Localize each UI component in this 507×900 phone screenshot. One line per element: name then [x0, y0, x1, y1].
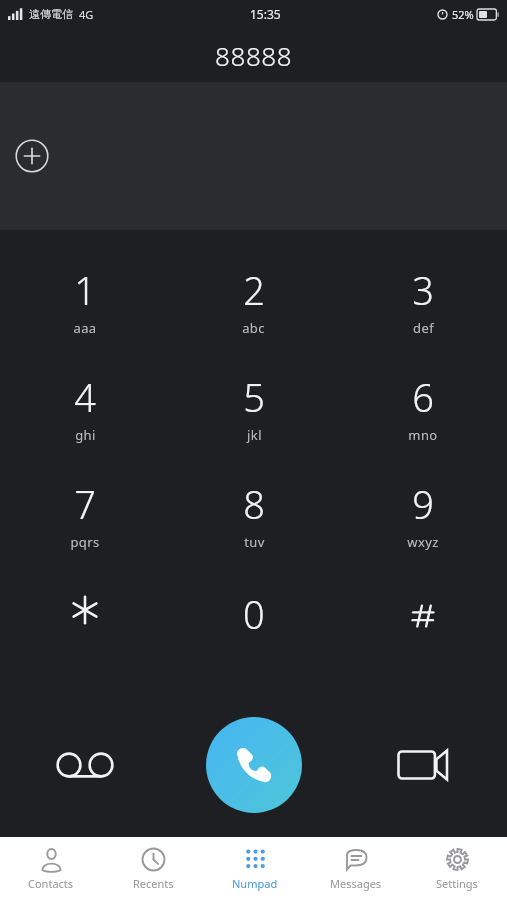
button[interactable]: 8	[169, 472, 338, 557]
staticText: wxyz	[407, 533, 439, 551]
staticText: 遠傳電信	[29, 7, 73, 21]
button[interactable]: 6	[338, 365, 507, 450]
button[interactable]: Settings	[406, 837, 507, 900]
staticText: Settings	[436, 876, 478, 891]
staticText: 0	[243, 588, 265, 640]
staticText: aaa	[73, 319, 97, 337]
button[interactable]: Messages	[305, 837, 406, 900]
staticText: 1	[74, 264, 96, 316]
button[interactable]: 3	[338, 258, 507, 343]
staticText: 8	[243, 478, 265, 530]
staticText: ghi	[75, 426, 96, 444]
button[interactable]: 9	[338, 472, 507, 557]
staticText: Messages	[330, 876, 382, 891]
button[interactable]: 4	[0, 365, 169, 450]
staticText: 3	[412, 264, 434, 316]
staticText: 15:35	[250, 6, 281, 22]
staticText: mno	[408, 426, 438, 444]
staticText: 52%	[452, 7, 474, 22]
staticText: 6	[412, 371, 434, 423]
staticText: Contacts	[28, 876, 74, 891]
staticText: 88888	[215, 38, 293, 73]
button[interactable]: Add contact	[15, 139, 49, 173]
staticText: abc	[242, 319, 265, 337]
button[interactable]: Recents	[102, 837, 204, 900]
staticText: 9	[412, 478, 434, 530]
button[interactable]: Call	[206, 717, 302, 813]
button[interactable]: Voicemail	[0, 715, 169, 815]
staticText: 2	[243, 264, 265, 316]
button[interactable]: Numpad	[204, 837, 305, 900]
staticText: pqrs	[70, 533, 100, 551]
button[interactable]: Contacts	[0, 837, 102, 900]
staticText: jkl	[247, 426, 262, 444]
button[interactable]: 2	[169, 258, 338, 343]
button[interactable]: 5	[169, 365, 338, 450]
staticText: 7	[74, 478, 96, 530]
staticText: 5	[243, 371, 265, 423]
staticText: tuv	[244, 533, 265, 551]
button[interactable]: Star	[0, 579, 169, 649]
button[interactable]: 0	[169, 579, 338, 649]
button[interactable]: Video call	[338, 715, 507, 815]
button[interactable]: 1	[0, 258, 169, 343]
staticText: 4	[74, 371, 96, 423]
staticText: Recents	[133, 876, 174, 891]
button[interactable]: Pound	[338, 579, 507, 649]
button[interactable]: 7	[0, 472, 169, 557]
staticText: 4G	[79, 7, 94, 22]
staticText: def	[413, 319, 434, 337]
staticText: Numpad	[232, 876, 278, 891]
